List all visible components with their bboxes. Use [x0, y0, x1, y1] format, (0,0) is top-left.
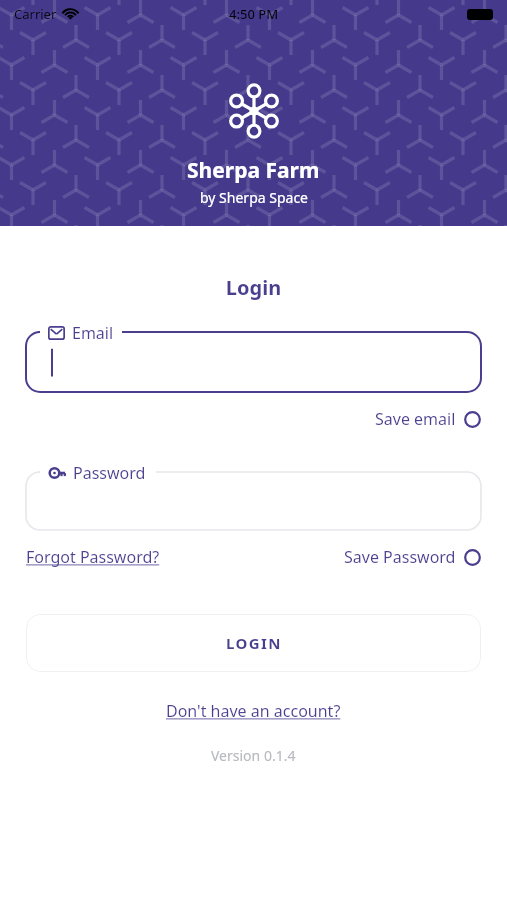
staticText: Login — [0, 274, 507, 301]
staticText: Carrier — [14, 5, 57, 23]
staticText: Password — [73, 462, 146, 484]
button[interactable]: Email — [26, 322, 481, 392]
button[interactable]: Password — [26, 462, 481, 530]
other: Save Password — [464, 549, 481, 566]
button[interactable]: Forgot Password? — [26, 542, 160, 572]
staticText: Forgot Password? — [26, 546, 160, 568]
staticText: Version 0.1.4 — [211, 746, 296, 765]
button[interactable]: LOGIN — [26, 614, 481, 672]
staticText: by Sherpa Space — [200, 188, 308, 207]
other: Save email — [464, 411, 481, 428]
staticText: Don't have an account? — [166, 700, 341, 722]
staticText: Email — [72, 322, 114, 344]
staticText: LOGIN — [226, 633, 282, 653]
staticText: Save email — [375, 408, 456, 430]
button[interactable]: Save email — [375, 404, 481, 434]
button[interactable]: Don't have an account? — [166, 696, 341, 726]
staticText: Sherpa Farm — [187, 156, 320, 185]
staticText: 4:50 PM — [229, 5, 279, 23]
button[interactable]: Save Password — [344, 542, 481, 572]
staticText: Save Password — [344, 546, 456, 568]
